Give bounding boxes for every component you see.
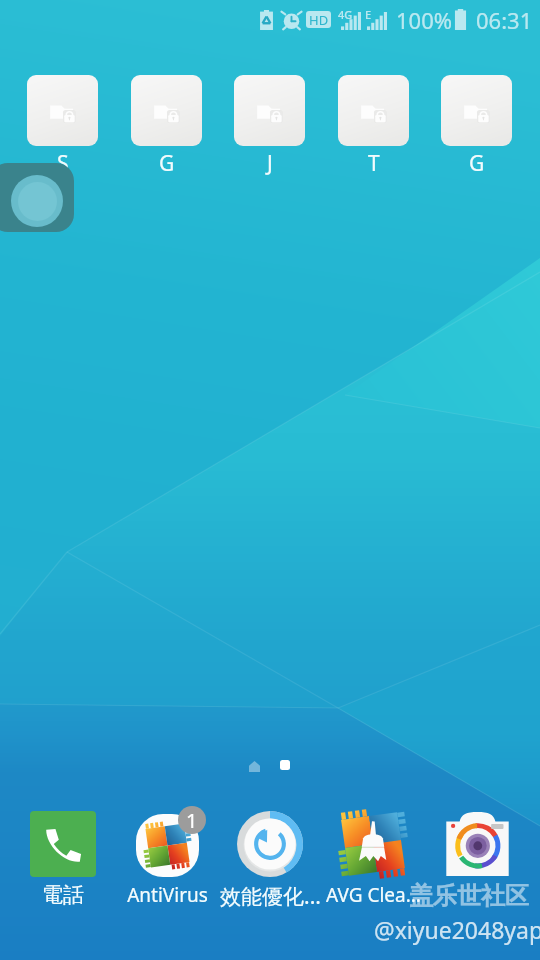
staticText: T bbox=[368, 149, 380, 178]
staticText: 電話 bbox=[42, 882, 84, 908]
staticText: J bbox=[267, 149, 273, 178]
button[interactable]: AVG Clea... bbox=[321, 810, 425, 908]
staticText: HD bbox=[309, 11, 329, 28]
button[interactable]: T bbox=[338, 75, 409, 178]
button[interactable]: S bbox=[27, 75, 98, 178]
staticText: G bbox=[159, 149, 175, 178]
staticText: S bbox=[57, 149, 69, 178]
staticText: 1 bbox=[186, 807, 198, 834]
button[interactable] bbox=[425, 810, 529, 908]
staticText: 盖乐世社区 bbox=[409, 881, 529, 911]
button[interactable]: J bbox=[234, 75, 305, 178]
button[interactable]: 效能優化... bbox=[218, 810, 322, 911]
button[interactable]: G bbox=[131, 75, 202, 178]
staticText: AntiVirus bbox=[127, 882, 208, 908]
button[interactable]: G bbox=[441, 75, 512, 178]
button[interactable]: 1 bbox=[115, 810, 219, 908]
staticText: 效能優化... bbox=[220, 882, 321, 911]
staticText: AVG Clea... bbox=[326, 882, 421, 908]
button[interactable]: 電話 bbox=[11, 810, 115, 908]
staticText: 06:31 bbox=[476, 5, 533, 35]
staticText: @xiyue2048yap bbox=[374, 914, 540, 945]
staticText: G bbox=[469, 149, 485, 178]
staticText: 4G bbox=[338, 7, 353, 22]
staticText: 100% bbox=[396, 5, 453, 35]
staticText: E bbox=[365, 7, 372, 22]
